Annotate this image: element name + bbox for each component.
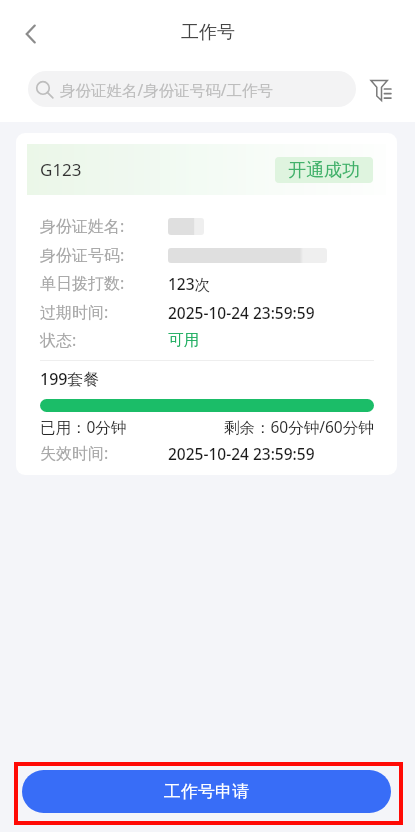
staticText: 已用：0分钟	[40, 416, 127, 437]
staticText: 身份证姓名/身份证号码/工作号	[60, 79, 274, 100]
staticText: 过期时间:	[40, 301, 109, 323]
button[interactable]: Filter	[364, 74, 396, 106]
staticText: G123	[40, 158, 82, 181]
staticText: 123次	[168, 273, 211, 294]
staticText: 状态:	[40, 329, 77, 351]
staticText: 199套餐	[40, 368, 100, 390]
staticText: 工作号申请	[164, 781, 249, 802]
staticText: 可用	[168, 330, 199, 350]
staticText: 身份证号码:	[40, 244, 125, 266]
staticText: 单日拨打数:	[40, 272, 125, 294]
staticText: 身份证姓名:	[40, 215, 125, 237]
button[interactable]: Back	[8, 11, 54, 57]
staticText: 失效时间:	[40, 442, 109, 464]
button[interactable]: 身份证姓名/身份证号码/工作号	[28, 71, 356, 107]
staticText: 2025-10-24 23:59:59	[168, 302, 315, 323]
staticText: 开通成功	[288, 159, 360, 182]
staticText: 工作号	[181, 21, 235, 44]
button[interactable]: 工作号申请	[22, 770, 391, 813]
staticText: 2025-10-24 23:59:59	[168, 443, 315, 464]
staticText: 剩余：60分钟/60分钟	[224, 416, 374, 437]
